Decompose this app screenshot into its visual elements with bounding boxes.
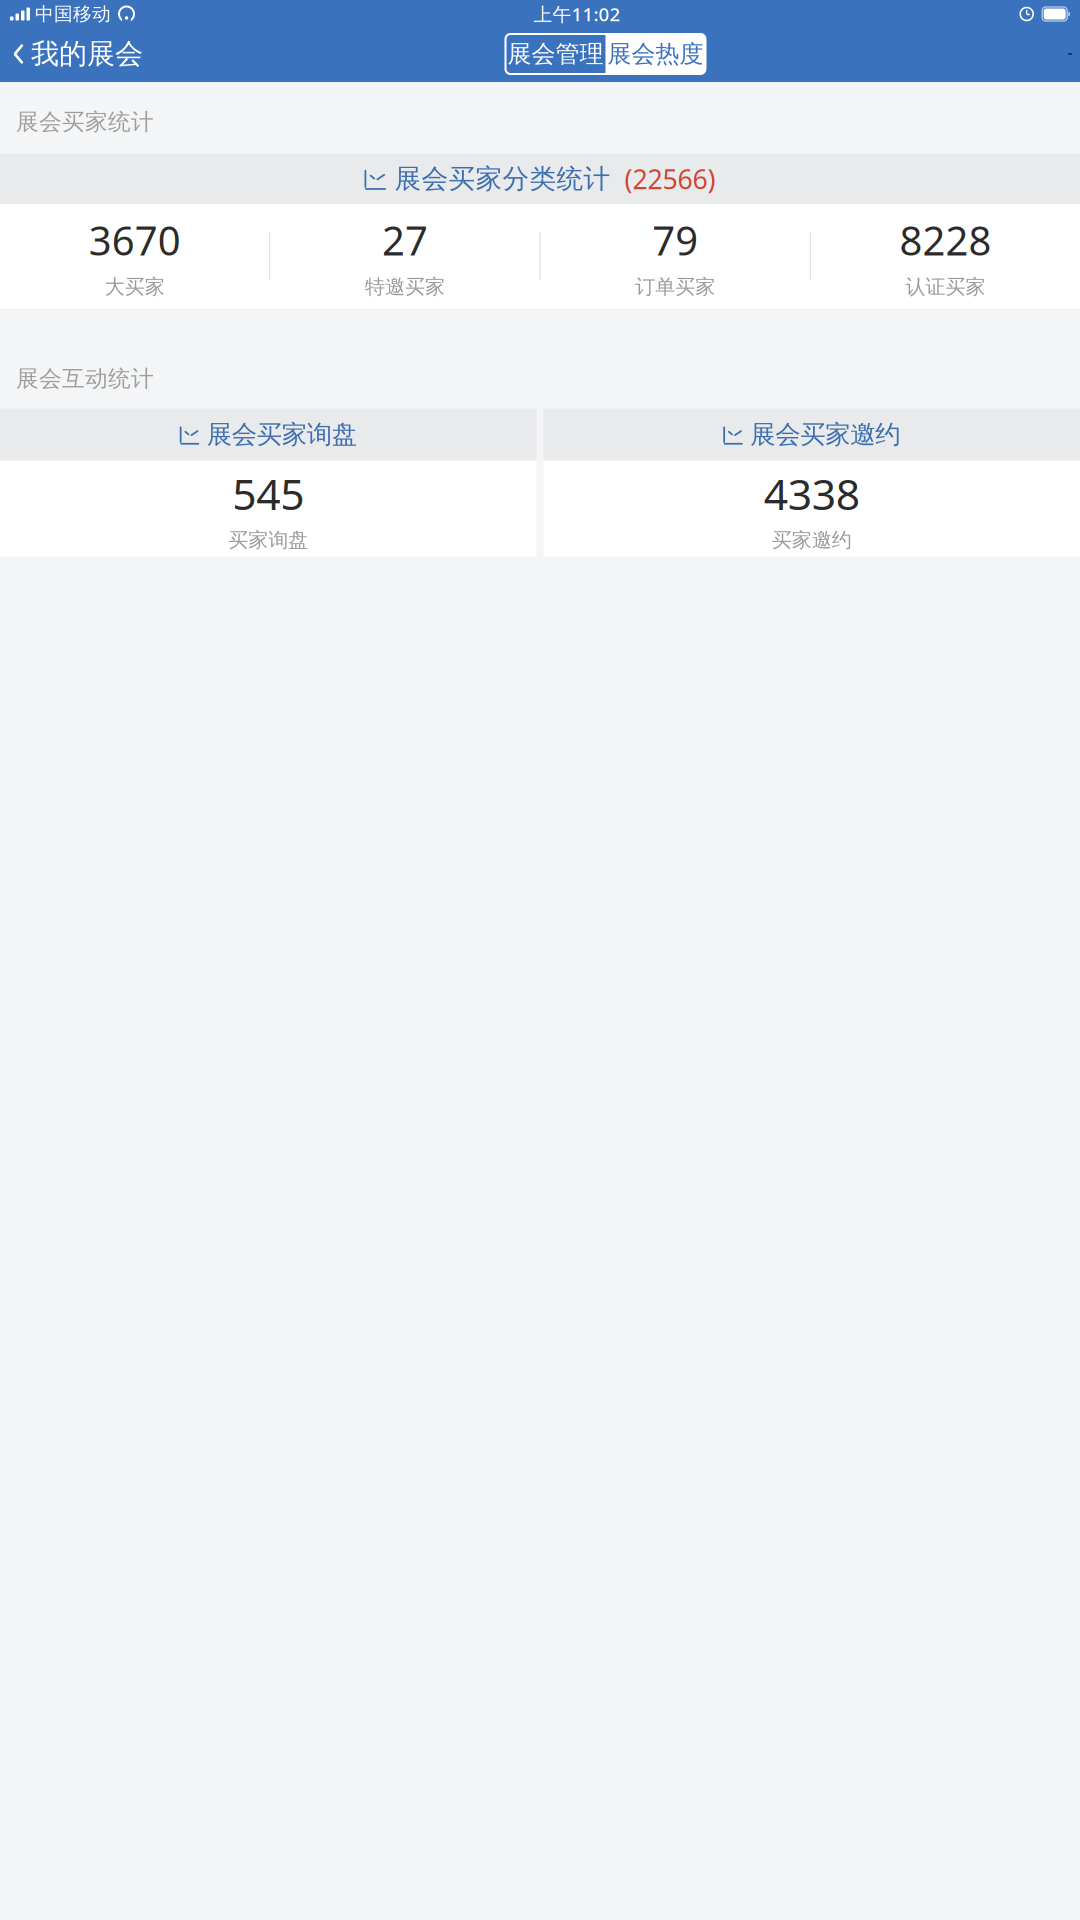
staticText: (22566) [624,161,715,196]
staticText: 展会管理 [507,39,603,69]
staticText: 展会买家邀约 [750,419,900,450]
staticText: 特邀买家 [365,275,445,299]
staticText: 展会热度 [607,39,703,69]
staticText: 展会互动统计 [16,365,154,393]
staticText: 上午11:02 [534,2,621,26]
button[interactable]: 展会热度 [605,34,705,74]
staticText: 8228 [899,213,991,267]
staticText: 大买家 [105,275,165,299]
button[interactable]: 我的展会 [0,31,143,77]
staticText: 4338 [764,465,860,522]
staticText: 3670 [89,213,181,267]
staticText: 27 [382,213,428,267]
button[interactable]: 展会买家询盘 [0,409,536,557]
staticText: 订单买家 [635,275,715,299]
staticText: 展会买家统计 [16,108,154,136]
button[interactable]: 展会买家邀约 [543,409,1080,557]
staticText: 展会买家询盘 [207,419,357,450]
button[interactable]: 展会管理 [505,34,605,74]
staticText: 我的展会 [31,37,143,71]
staticText: 买家询盘 [228,528,308,552]
staticText: 545 [232,465,304,522]
staticText: 79 [652,213,698,267]
staticText: 买家邀约 [772,528,852,552]
staticText: 认证买家 [905,275,985,299]
staticText: 展会买家分类统计 [394,162,610,195]
staticText: 中国移动 [35,2,111,25]
